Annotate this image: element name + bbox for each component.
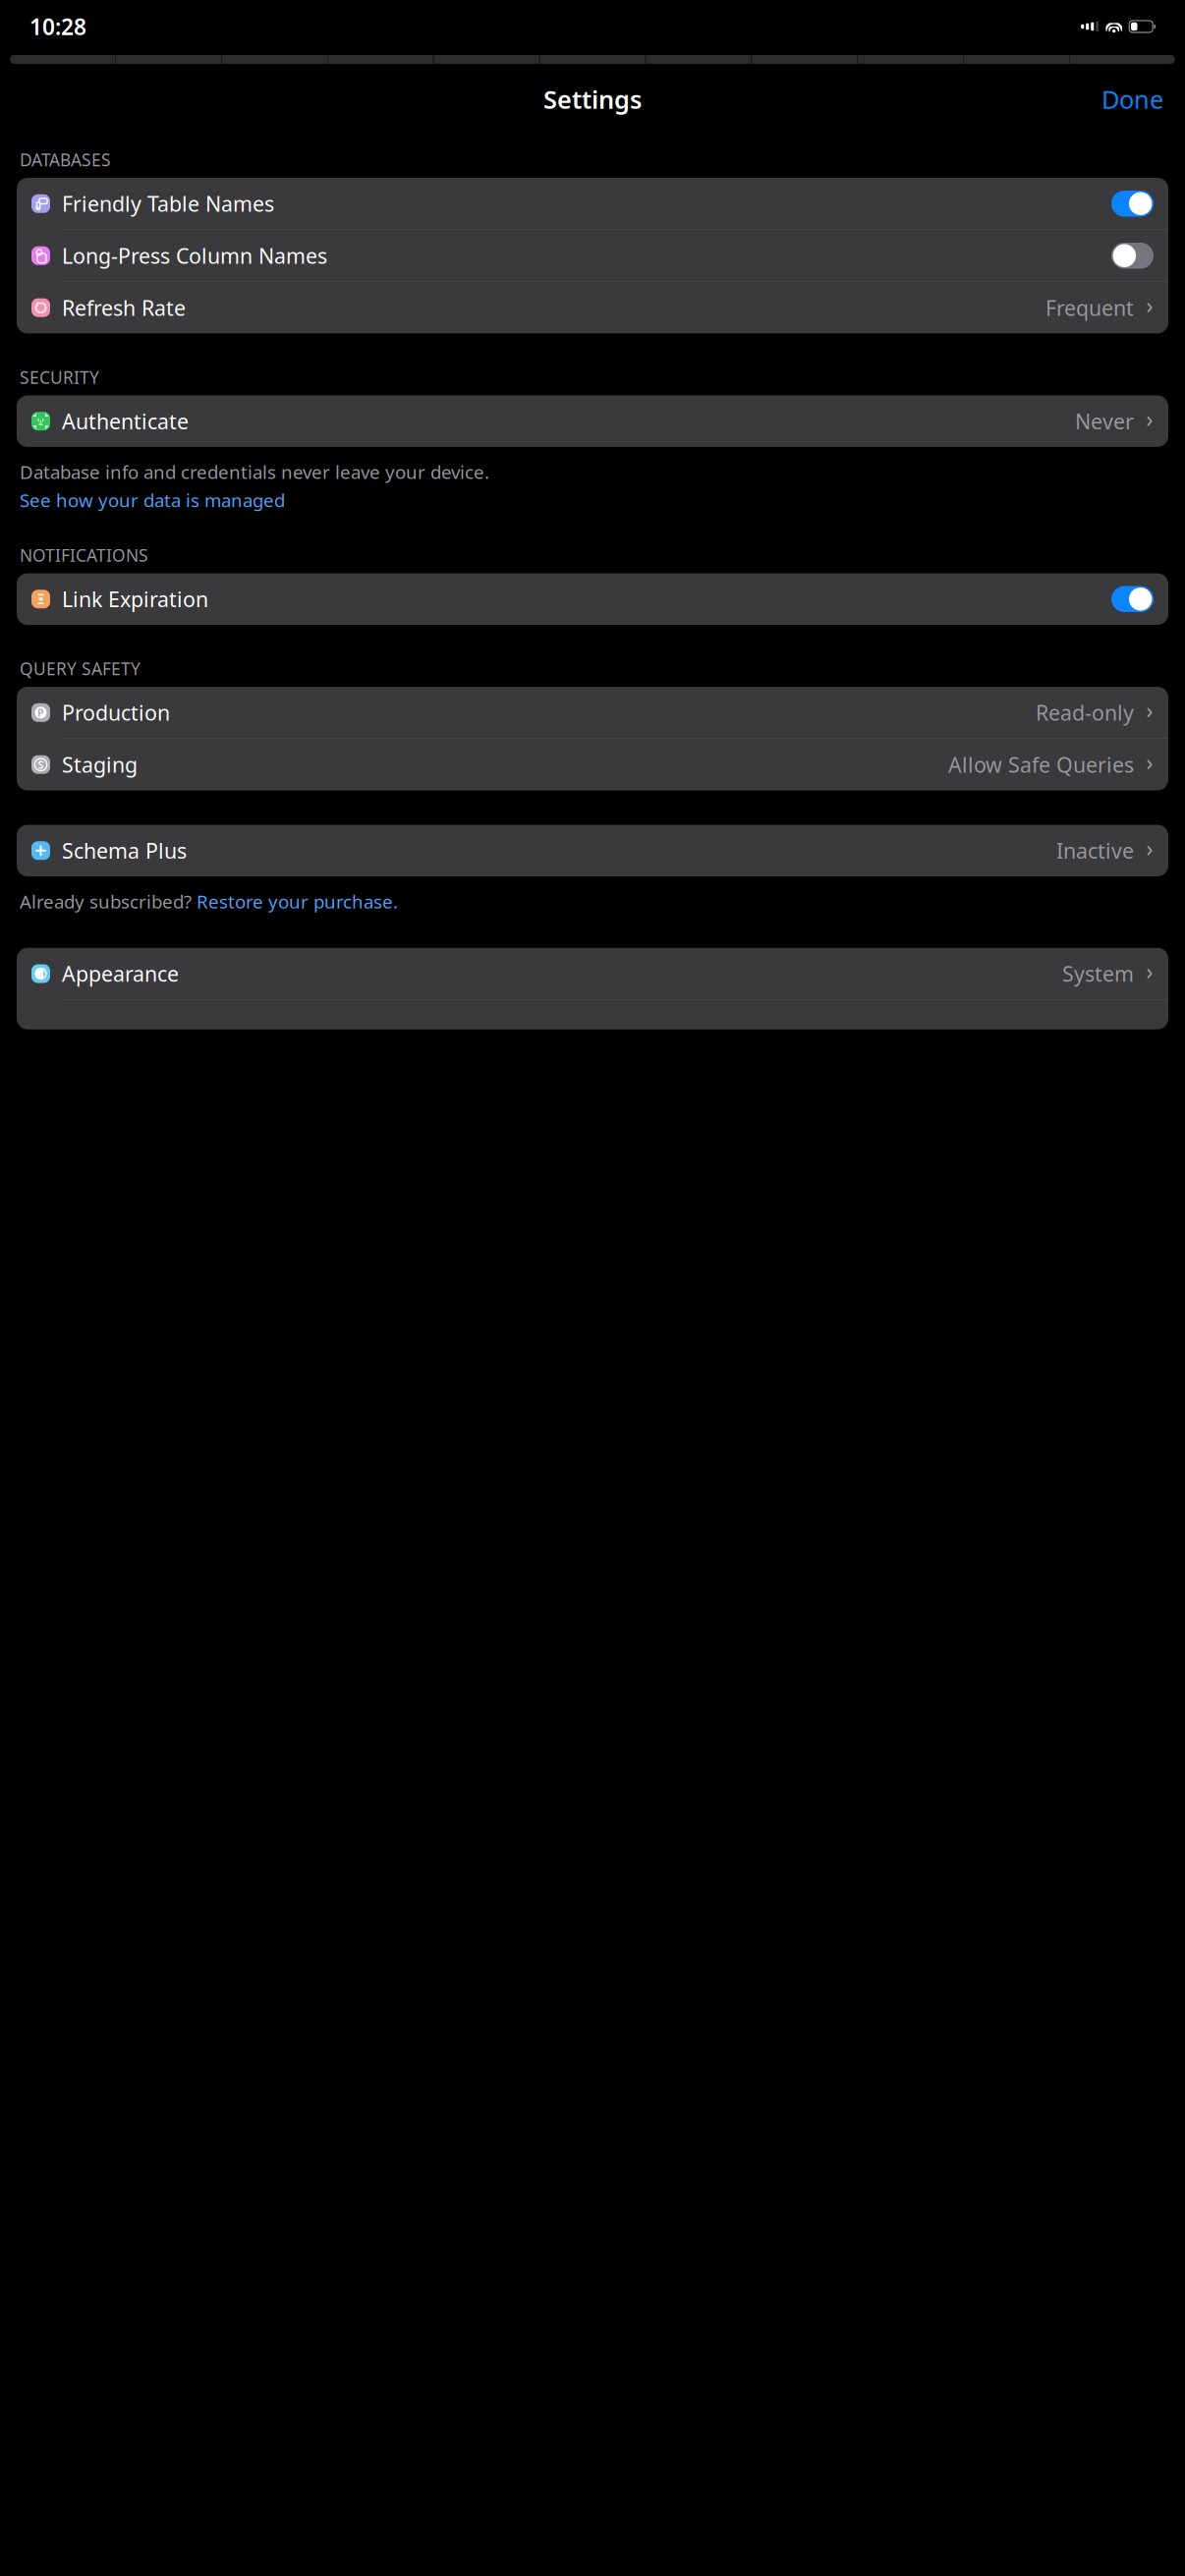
staticText: Schema Plus bbox=[62, 837, 187, 864]
staticText: Frequent bbox=[1045, 294, 1134, 322]
staticText: System bbox=[1062, 960, 1134, 988]
button[interactable]: Authenticate bbox=[17, 395, 1168, 447]
button[interactable]: Link Expiration bbox=[17, 573, 1168, 625]
staticText: Refresh Rate bbox=[62, 294, 186, 322]
button[interactable]: Restore your purchase. bbox=[197, 889, 398, 913]
staticText: DATABASES bbox=[20, 148, 111, 171]
staticText: 10:28 bbox=[29, 12, 86, 41]
button[interactable]: Done bbox=[1088, 75, 1177, 124]
staticText: S bbox=[38, 758, 44, 772]
button[interactable]: Refresh Rate bbox=[17, 282, 1168, 333]
staticText: Settings bbox=[543, 83, 642, 116]
staticText: QUERY SAFETY bbox=[20, 657, 141, 680]
staticText: Authenticate bbox=[62, 407, 189, 435]
staticText: SECURITY bbox=[20, 366, 99, 388]
staticText: Production bbox=[62, 699, 170, 726]
staticText: Staging bbox=[62, 751, 138, 778]
staticText: Friendly Table Names bbox=[62, 190, 274, 218]
staticText: Read-only bbox=[1036, 699, 1134, 726]
staticText: P bbox=[37, 706, 44, 720]
button[interactable]: Long-Press Column Names bbox=[17, 230, 1168, 281]
button[interactable]: See how your data is managed bbox=[20, 488, 285, 512]
staticText: Already subscribed? bbox=[20, 889, 197, 913]
button[interactable]: P bbox=[17, 687, 1168, 738]
staticText: Allow Safe Queries bbox=[948, 751, 1134, 778]
staticText: Done bbox=[1101, 83, 1163, 116]
staticText: See how your data is managed bbox=[20, 488, 285, 512]
staticText: Link Expiration bbox=[62, 585, 208, 613]
staticText: Database info and credentials never leav… bbox=[20, 460, 489, 484]
button[interactable]: Appearance bbox=[17, 948, 1168, 999]
button[interactable]: Schema Plus bbox=[17, 825, 1168, 876]
staticText: Inactive bbox=[1056, 837, 1134, 864]
button[interactable]: S bbox=[17, 739, 1168, 790]
staticText: Restore your purchase. bbox=[197, 889, 398, 913]
button[interactable]: Friendly Table Names bbox=[17, 178, 1168, 229]
staticText: NOTIFICATIONS bbox=[20, 544, 148, 566]
staticText: Never bbox=[1075, 407, 1134, 435]
staticText: Long-Press Column Names bbox=[62, 242, 327, 270]
staticText: Appearance bbox=[62, 960, 179, 988]
